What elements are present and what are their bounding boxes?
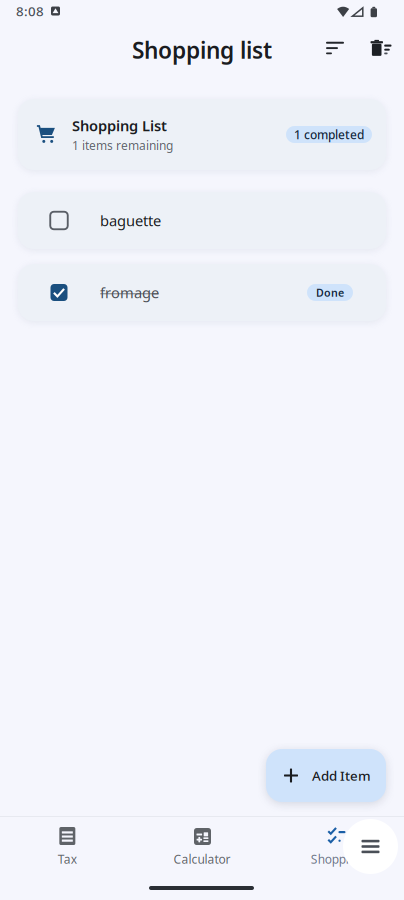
- button[interactable]: Shopping: [269, 811, 404, 873]
- button[interactable]: Tax: [0, 811, 135, 873]
- button[interactable]: Mark baguette done: [41, 202, 77, 238]
- button[interactable]: Clear completed: [361, 26, 401, 70]
- button[interactable]: baguette: [18, 192, 386, 249]
- staticText: 8:08: [16, 2, 44, 20]
- button[interactable]: Add Item: [266, 749, 386, 802]
- staticText: baguette: [100, 211, 161, 230]
- staticText: 1 completed: [294, 126, 364, 142]
- button[interactable]: Menu: [343, 819, 398, 874]
- staticText: Shopping List: [72, 116, 167, 135]
- button[interactable]: Mark baguette not done: [41, 274, 77, 310]
- staticText: Add Item: [312, 767, 371, 784]
- button[interactable]: Shopping List: [18, 99, 386, 170]
- staticText: Shopping: [311, 851, 363, 867]
- staticText: Shopping list: [132, 35, 272, 65]
- staticText: Done: [316, 285, 344, 300]
- staticText: Calculator: [173, 851, 230, 867]
- button[interactable]: fromage: [18, 264, 386, 321]
- button[interactable]: Calculator: [135, 811, 269, 873]
- staticText: fromage: [100, 283, 159, 302]
- staticText: Tax: [58, 851, 77, 867]
- staticText: 1 items remaining: [72, 137, 173, 153]
- button[interactable]: Sort: [315, 26, 355, 70]
